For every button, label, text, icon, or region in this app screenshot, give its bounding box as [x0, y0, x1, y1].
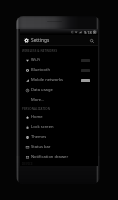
- staticText: Settings: [31, 37, 50, 44]
- button[interactable]: Themes: [20, 132, 98, 142]
- button[interactable]: Status bar: [20, 142, 98, 152]
- staticText: Lock screen: [31, 124, 54, 130]
- staticText: Notification drawer: [31, 154, 69, 160]
- button[interactable]: More...: [20, 95, 98, 105]
- staticText: Data usage: [31, 87, 53, 93]
- staticText: More...: [31, 97, 45, 103]
- staticText: WIRELESS & NETWORKS: [22, 49, 58, 53]
- staticText: 9:18: [84, 30, 92, 35]
- button[interactable]: Data usage: [20, 85, 98, 95]
- button[interactable]: Mobile networks: [20, 75, 98, 85]
- staticText: Status bar: [31, 144, 51, 150]
- staticText: Bluetooth: [31, 67, 50, 73]
- button[interactable]: Lock screen: [20, 122, 98, 132]
- staticText: PERSONALIZATION: [22, 107, 51, 111]
- button[interactable]: Wi-Fi: [20, 55, 98, 65]
- staticText: Mobile networks: [31, 77, 64, 83]
- button[interactable]: Search: [88, 37, 95, 44]
- staticText: Home: [31, 114, 43, 120]
- button[interactable]: Bluetooth: [20, 65, 98, 75]
- button[interactable]: Home: [20, 112, 98, 122]
- staticText: DEVICE: [22, 162, 33, 166]
- button[interactable]: Notification drawer: [20, 152, 98, 162]
- staticText: Wi-Fi: [31, 57, 41, 63]
- staticText: Themes: [31, 134, 47, 140]
- button[interactable]: Toggle Mobile networks: [81, 79, 90, 82]
